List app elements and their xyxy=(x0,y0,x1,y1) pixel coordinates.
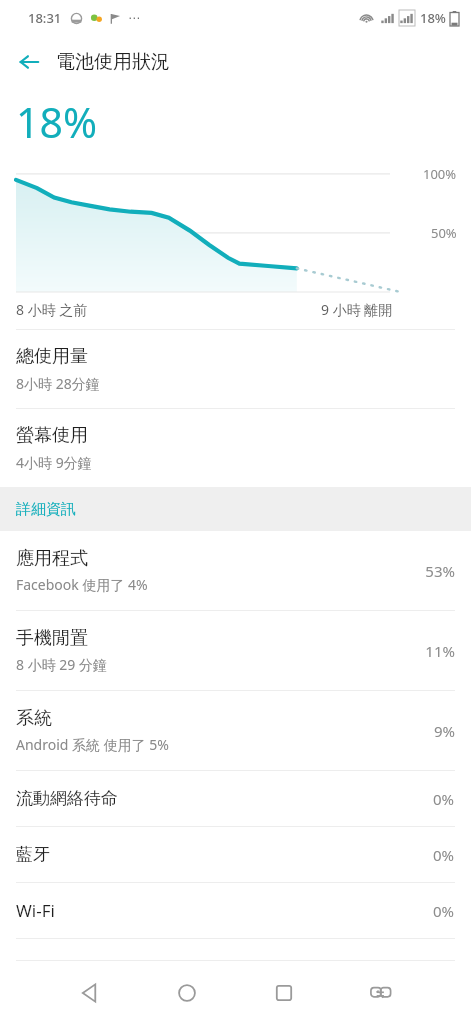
staticText: 系統 xyxy=(16,707,52,730)
staticText: Facebook 使用了 4% xyxy=(16,575,148,594)
staticText: 9% xyxy=(433,721,455,741)
staticText: 藍牙 xyxy=(16,844,433,865)
button[interactable]: Back xyxy=(10,43,48,81)
staticText: 4小時 9分鐘 xyxy=(16,453,92,472)
staticText: 0% xyxy=(433,845,455,865)
button[interactable]: 詳細資訊 xyxy=(0,487,471,531)
button[interactable]: 應用程式 xyxy=(0,531,471,610)
button[interactable]: Wi-Fi xyxy=(0,883,471,938)
staticText: 11% xyxy=(425,641,455,661)
staticText: 100% xyxy=(423,165,457,183)
button[interactable]: 系統 xyxy=(0,691,471,770)
staticText: 8 小時 29 分鐘 xyxy=(16,655,107,674)
button[interactable]: 總使用量 xyxy=(0,330,471,408)
staticText: 螢幕使用 xyxy=(16,424,88,447)
button[interactable]: 流動網絡待命 xyxy=(0,771,471,826)
button[interactable]: Switch xyxy=(357,969,405,1017)
staticText: Wi-Fi xyxy=(16,899,433,922)
staticText: 18% xyxy=(16,94,97,150)
button[interactable]: Recents xyxy=(260,969,308,1017)
staticText: 50% xyxy=(431,224,457,242)
button[interactable]: Back xyxy=(0,36,471,88)
staticText: 53% xyxy=(425,561,455,581)
staticText: 0% xyxy=(433,901,455,921)
staticText: 總使用量 xyxy=(16,345,88,368)
staticText: Android 系統 使用了 5% xyxy=(16,735,169,754)
staticText: 應用程式 xyxy=(16,547,88,570)
button[interactable]: 手機閒置 xyxy=(0,611,471,690)
button[interactable]: 藍牙 xyxy=(0,827,471,882)
staticText: 8小時 28分鐘 xyxy=(16,374,100,393)
staticText: 電池使用狀況 xyxy=(56,50,170,74)
button[interactable]: Back xyxy=(66,969,114,1017)
button[interactable]: 螢幕使用 xyxy=(0,409,471,487)
staticText: 18:31 xyxy=(28,9,62,27)
staticText: 流動網絡待命 xyxy=(16,788,433,809)
button[interactable]: Home xyxy=(163,969,211,1017)
staticText: 手機閒置 xyxy=(16,627,88,650)
staticText: ⋯ xyxy=(128,11,140,25)
staticText: 0% xyxy=(433,789,455,809)
staticText: 詳細資訊 xyxy=(16,500,76,519)
staticText: 8 小時 之前 xyxy=(16,300,88,319)
staticText: 9 小時 離開 xyxy=(321,300,393,319)
staticText: 18% xyxy=(420,9,446,27)
